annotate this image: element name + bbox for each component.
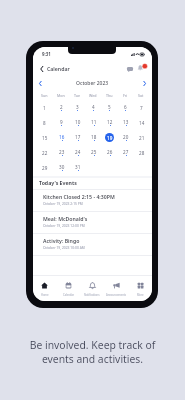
- staticText: 15: [42, 135, 48, 141]
- staticText: 10: [75, 119, 81, 125]
- button[interactable]: Back: [37, 64, 46, 73]
- staticText: 9:31: [42, 51, 51, 57]
- button[interactable]: 15: [40, 133, 49, 142]
- staticText: 20: [123, 134, 129, 140]
- button[interactable]: 3: [73, 103, 82, 112]
- staticText: Calendar: [47, 65, 70, 72]
- staticText: 1: [43, 105, 46, 111]
- button[interactable]: Notifications: [137, 63, 148, 74]
- staticText: Thu: [106, 93, 113, 98]
- staticText: Wed: [89, 93, 97, 98]
- staticText: 29: [42, 165, 48, 171]
- button[interactable]: 7: [137, 103, 146, 112]
- staticText: Tue: [74, 93, 81, 98]
- button[interactable]: 16: [57, 133, 66, 142]
- button[interactable]: Next month: [140, 79, 149, 88]
- button[interactable]: 9: [57, 118, 66, 127]
- staticText: 12: [107, 119, 113, 125]
- staticText: Notifications: [84, 293, 100, 297]
- button[interactable]: 23: [57, 148, 66, 157]
- staticText: Today's Events: [39, 179, 77, 186]
- button[interactable]: 27: [121, 148, 130, 157]
- staticText: October 2023: [76, 80, 109, 87]
- button[interactable]: Meal: McDonald's: [33, 211, 152, 233]
- button[interactable]: 6: [121, 103, 130, 112]
- button[interactable]: 19: [105, 133, 114, 142]
- staticText: Sun: [41, 93, 48, 98]
- button[interactable]: 25: [89, 148, 98, 157]
- staticText: Mon: [57, 93, 65, 98]
- staticText: 9: [60, 119, 63, 125]
- button[interactable]: 28: [137, 148, 146, 157]
- button[interactable]: 2: [57, 103, 66, 112]
- staticText: Sat: [138, 93, 144, 98]
- staticText: 23: [59, 149, 65, 155]
- button[interactable]: Kitchen Closed 2:15 - 4:30PM: [33, 189, 152, 211]
- button[interactable]: 5: [105, 103, 114, 112]
- staticText: October 19, 2023 10:00 AM: [43, 245, 85, 249]
- button[interactable]: Activity: Bingo: [33, 233, 152, 255]
- button[interactable]: 13: [121, 118, 130, 127]
- staticText: October 19, 2023 12:00 PM: [43, 223, 85, 227]
- button[interactable]: 12: [105, 118, 114, 127]
- staticText: More: [137, 293, 144, 297]
- button[interactable]: 18: [89, 133, 98, 142]
- button[interactable]: 8: [40, 118, 49, 127]
- staticText: Kitchen Closed 2:15 - 4:30PM: [43, 193, 115, 200]
- button[interactable]: 22: [40, 148, 49, 157]
- button[interactable]: 14: [137, 118, 146, 127]
- button[interactable]: Home: [33, 276, 56, 297]
- staticText: 25: [91, 149, 97, 155]
- staticText: 24: [75, 149, 81, 155]
- button[interactable]: 4: [89, 103, 98, 112]
- staticText: 7: [140, 105, 143, 111]
- button[interactable]: 26: [105, 148, 114, 157]
- button[interactable]: 29: [40, 163, 49, 172]
- staticText: 11: [91, 119, 97, 125]
- staticText: 30: [59, 164, 65, 170]
- staticText: Announcements: [106, 293, 127, 297]
- button[interactable]: 11: [89, 118, 98, 127]
- button[interactable]: 30: [57, 163, 66, 172]
- staticText: 6: [124, 104, 127, 110]
- button[interactable]: 1: [40, 103, 49, 112]
- button[interactable]: Notifications: [80, 276, 104, 297]
- button[interactable]: Calendar: [56, 276, 80, 297]
- staticText: 31: [75, 164, 81, 170]
- staticText: 28: [139, 150, 145, 156]
- staticText: Home: [41, 293, 49, 297]
- staticText: 26: [107, 149, 113, 155]
- staticText: October 19, 2023 2:15 PM: [43, 201, 83, 205]
- staticText: Activity: Bingo: [43, 237, 80, 244]
- staticText: 5: [108, 104, 111, 110]
- staticText: 3: [76, 104, 79, 110]
- staticText: Meal: McDonald's: [43, 215, 88, 222]
- button[interactable]: Announcements: [104, 276, 128, 297]
- button[interactable]: 31: [73, 163, 82, 172]
- button[interactable]: 17: [73, 133, 82, 142]
- staticText: 27: [123, 149, 129, 155]
- staticText: 2: [60, 104, 63, 110]
- staticText: 14: [139, 120, 145, 126]
- button[interactable]: 20: [121, 133, 130, 142]
- staticText: 17: [75, 134, 81, 140]
- staticText: 18: [91, 134, 97, 140]
- staticText: Calendar: [63, 293, 74, 297]
- staticText: 4: [92, 104, 95, 110]
- staticText: Fri: [123, 93, 128, 98]
- staticText: 19: [107, 135, 113, 141]
- button[interactable]: 21: [137, 133, 146, 142]
- button[interactable]: 10: [73, 118, 82, 127]
- staticText: 16: [59, 134, 65, 140]
- button[interactable]: More: [128, 276, 152, 297]
- staticText: 22: [42, 150, 48, 156]
- button[interactable]: 24: [73, 148, 82, 157]
- staticText: 8: [43, 120, 46, 126]
- staticText: Be involved. Keep track of events and ac…: [0, 338, 185, 367]
- staticText: 21: [139, 135, 145, 141]
- button[interactable]: Messages: [125, 64, 135, 74]
- button[interactable]: Previous month: [36, 79, 45, 88]
- staticText: 13: [123, 119, 129, 125]
